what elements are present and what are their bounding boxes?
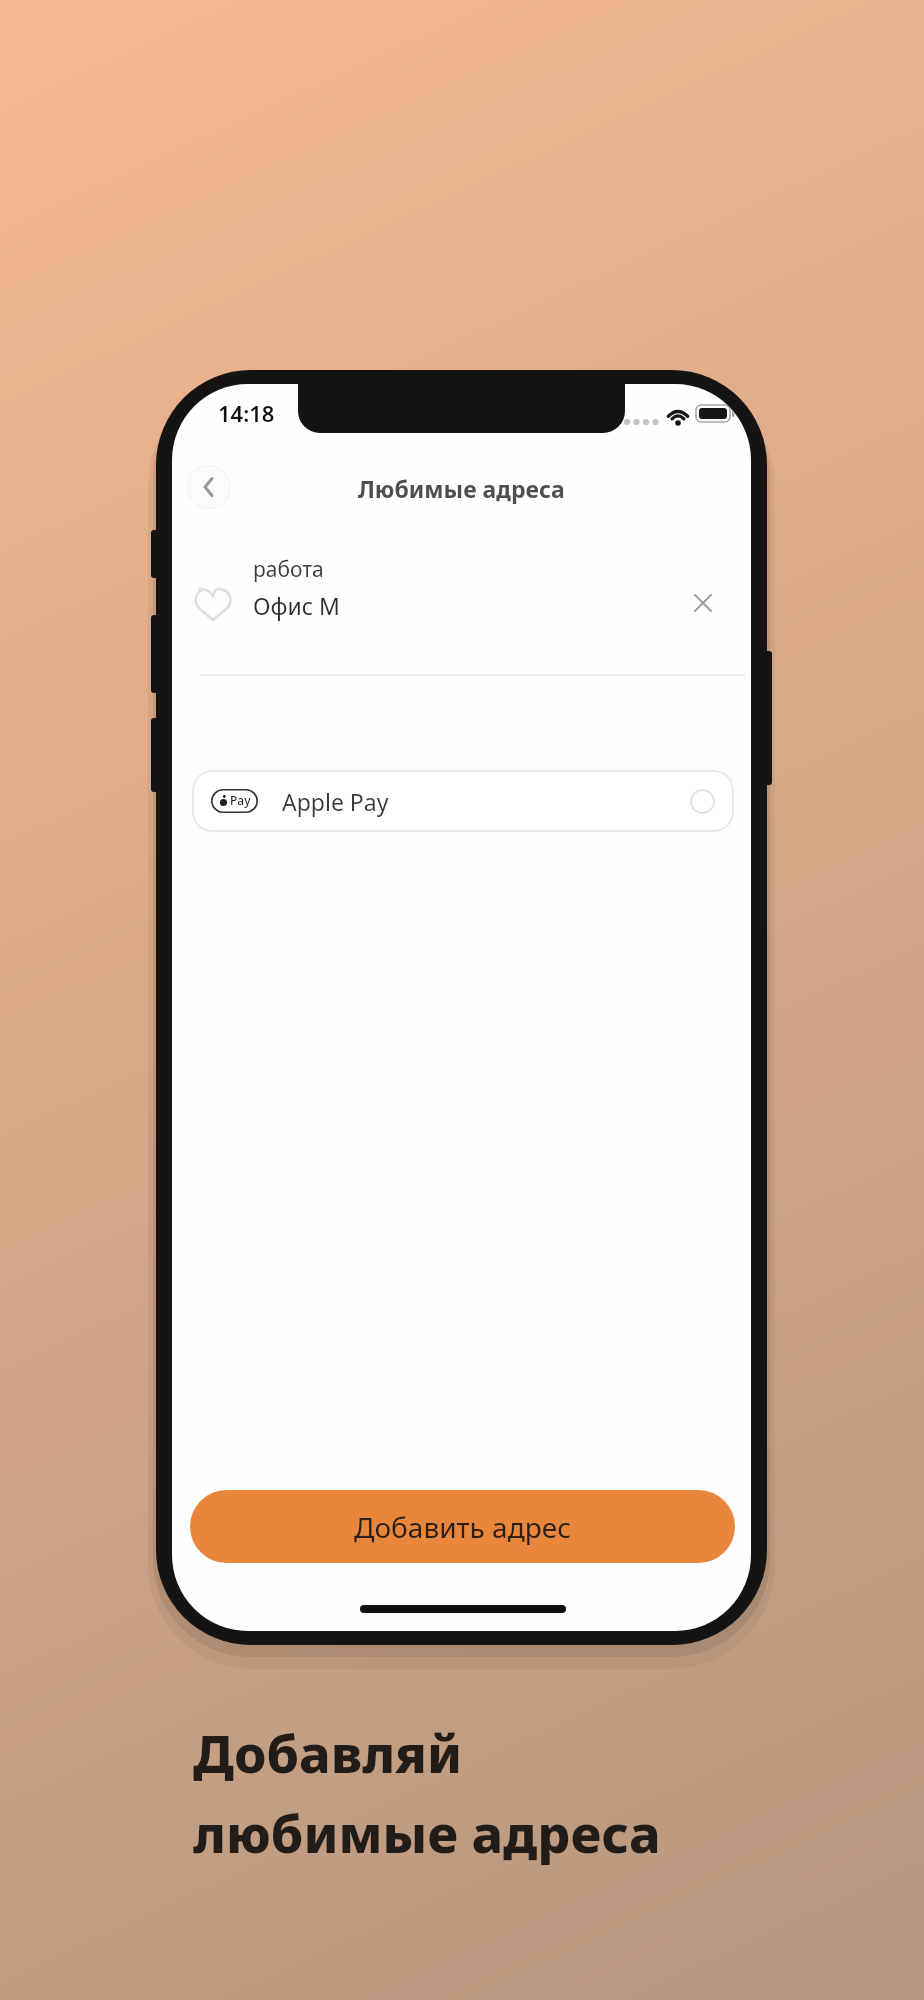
staticText: Офис М xyxy=(253,590,340,621)
staticText: 14:18 xyxy=(218,398,275,428)
staticText: работа xyxy=(253,555,324,584)
staticText: любимые адреса xyxy=(193,1797,661,1868)
button[interactable]: Pay xyxy=(192,770,734,832)
staticText: Pay xyxy=(230,792,251,808)
staticText: Любимые адреса xyxy=(358,473,565,504)
button[interactable]: Добавить адрес xyxy=(190,1490,735,1563)
staticText: Apple Pay xyxy=(282,786,389,817)
button[interactable] xyxy=(187,465,231,509)
staticText: Добавляй xyxy=(193,1717,462,1788)
button[interactable]: работа xyxy=(172,544,751,664)
staticText: Добавить адрес xyxy=(354,1508,571,1546)
